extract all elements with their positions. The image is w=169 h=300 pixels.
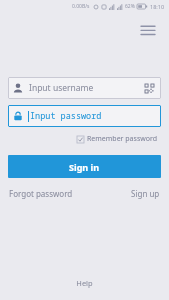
button[interactable]: Input username bbox=[8, 77, 161, 99]
staticText: 18:10 bbox=[150, 3, 165, 10]
staticText: Sign up bbox=[131, 188, 160, 199]
staticText: Help bbox=[76, 278, 93, 288]
staticText: 0.00B/s bbox=[72, 3, 90, 10]
staticText: 62% bbox=[125, 3, 135, 10]
staticText: Input password bbox=[30, 110, 102, 122]
button[interactable]: Remember password bbox=[75, 132, 160, 146]
button[interactable]: Menu bbox=[135, 17, 161, 43]
button[interactable]: Sign up bbox=[131, 186, 160, 201]
staticText: Sign in bbox=[69, 161, 100, 173]
staticText: Forgot password bbox=[9, 188, 73, 199]
button[interactable]: Input password bbox=[8, 105, 161, 127]
button[interactable]: Sign in bbox=[8, 155, 161, 178]
button[interactable]: Forgot password bbox=[9, 186, 73, 201]
staticText: Input username bbox=[29, 82, 142, 94]
staticText: Remember password bbox=[87, 134, 158, 144]
button[interactable]: Scan QR code bbox=[142, 81, 156, 95]
button[interactable]: Help bbox=[72, 274, 97, 292]
